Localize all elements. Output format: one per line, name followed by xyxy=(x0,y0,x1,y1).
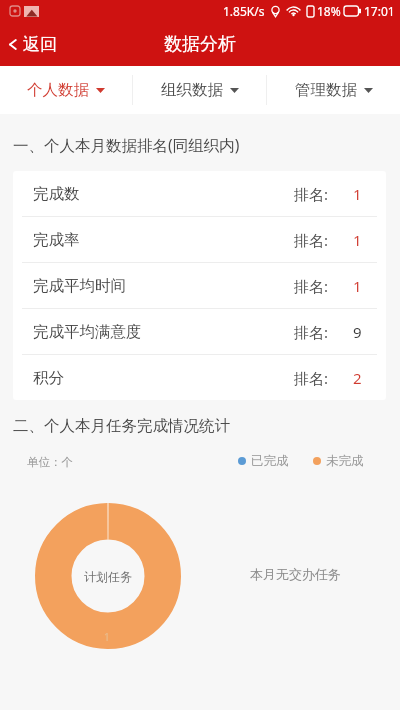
button[interactable]: 管理数据 xyxy=(267,66,400,114)
staticText: 本月无交办任务 xyxy=(250,566,341,582)
staticText: 1 xyxy=(104,630,110,644)
staticText: 9 xyxy=(353,322,362,342)
staticText: 已完成 xyxy=(251,453,289,469)
staticText: 1 xyxy=(353,184,362,204)
button[interactable]: 返回 xyxy=(0,22,80,66)
staticText: 排名: xyxy=(294,276,329,296)
other: 返回 xyxy=(5,37,20,52)
staticText: 积分 xyxy=(33,368,64,388)
button[interactable]: 完成平均满意度 xyxy=(13,309,386,354)
staticText: 17:01 xyxy=(364,3,395,19)
staticText: 管理数据 xyxy=(295,80,357,100)
button[interactable]: 组织数据 xyxy=(133,66,266,114)
staticText: 1.85K/s xyxy=(223,3,265,19)
staticText: 1 xyxy=(353,276,362,296)
button[interactable]: 完成率 xyxy=(13,217,386,262)
staticText: 单位：个 xyxy=(27,455,73,469)
staticText: 个人数据 xyxy=(27,80,89,100)
staticText: 完成平均时间 xyxy=(33,276,126,296)
staticText: 一、个人本月数据排名(同组织内) xyxy=(13,134,240,155)
staticText: 数据分析 xyxy=(164,33,236,56)
staticText: 完成率 xyxy=(33,230,80,250)
staticText: 二、个人本月任务完成情况统计 xyxy=(13,416,230,436)
staticText: 2 xyxy=(353,368,362,388)
staticText: 完成数 xyxy=(33,184,80,204)
staticText: 计划任务 xyxy=(84,569,132,584)
staticText: 排名: xyxy=(294,184,329,204)
staticText: 排名: xyxy=(294,368,329,388)
button[interactable]: 完成数 xyxy=(13,171,386,216)
button[interactable]: 已完成 xyxy=(238,453,289,469)
staticText: 未完成 xyxy=(326,453,364,469)
staticText: 完成平均满意度 xyxy=(33,322,142,342)
staticText: 18% xyxy=(317,3,341,19)
staticText: 排名: xyxy=(294,230,329,250)
staticText: 返回 xyxy=(23,34,57,55)
staticText: 排名: xyxy=(294,322,329,342)
staticText: 组织数据 xyxy=(161,80,223,100)
button[interactable]: 积分 xyxy=(13,355,386,400)
staticText: 1 xyxy=(353,230,362,250)
button[interactable]: 未完成 xyxy=(313,453,364,469)
button[interactable]: 个人数据 xyxy=(0,66,132,114)
button[interactable]: 完成平均时间 xyxy=(13,263,386,308)
